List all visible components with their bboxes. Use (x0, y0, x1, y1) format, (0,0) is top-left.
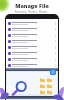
button[interactable]: More (6, 20, 58, 26)
button[interactable]: More (6, 44, 58, 50)
staticText: Manage File (0, 2, 64, 9)
button[interactable]: More (6, 62, 58, 68)
button[interactable]: Camera (50, 69, 56, 75)
button[interactable]: More (6, 56, 58, 62)
button[interactable]: More (6, 50, 58, 56)
button[interactable]: More (6, 26, 58, 32)
staticText: Rename, Delete, Share... (0, 10, 64, 14)
button[interactable]: More (6, 32, 58, 38)
button[interactable]: More (6, 38, 58, 44)
